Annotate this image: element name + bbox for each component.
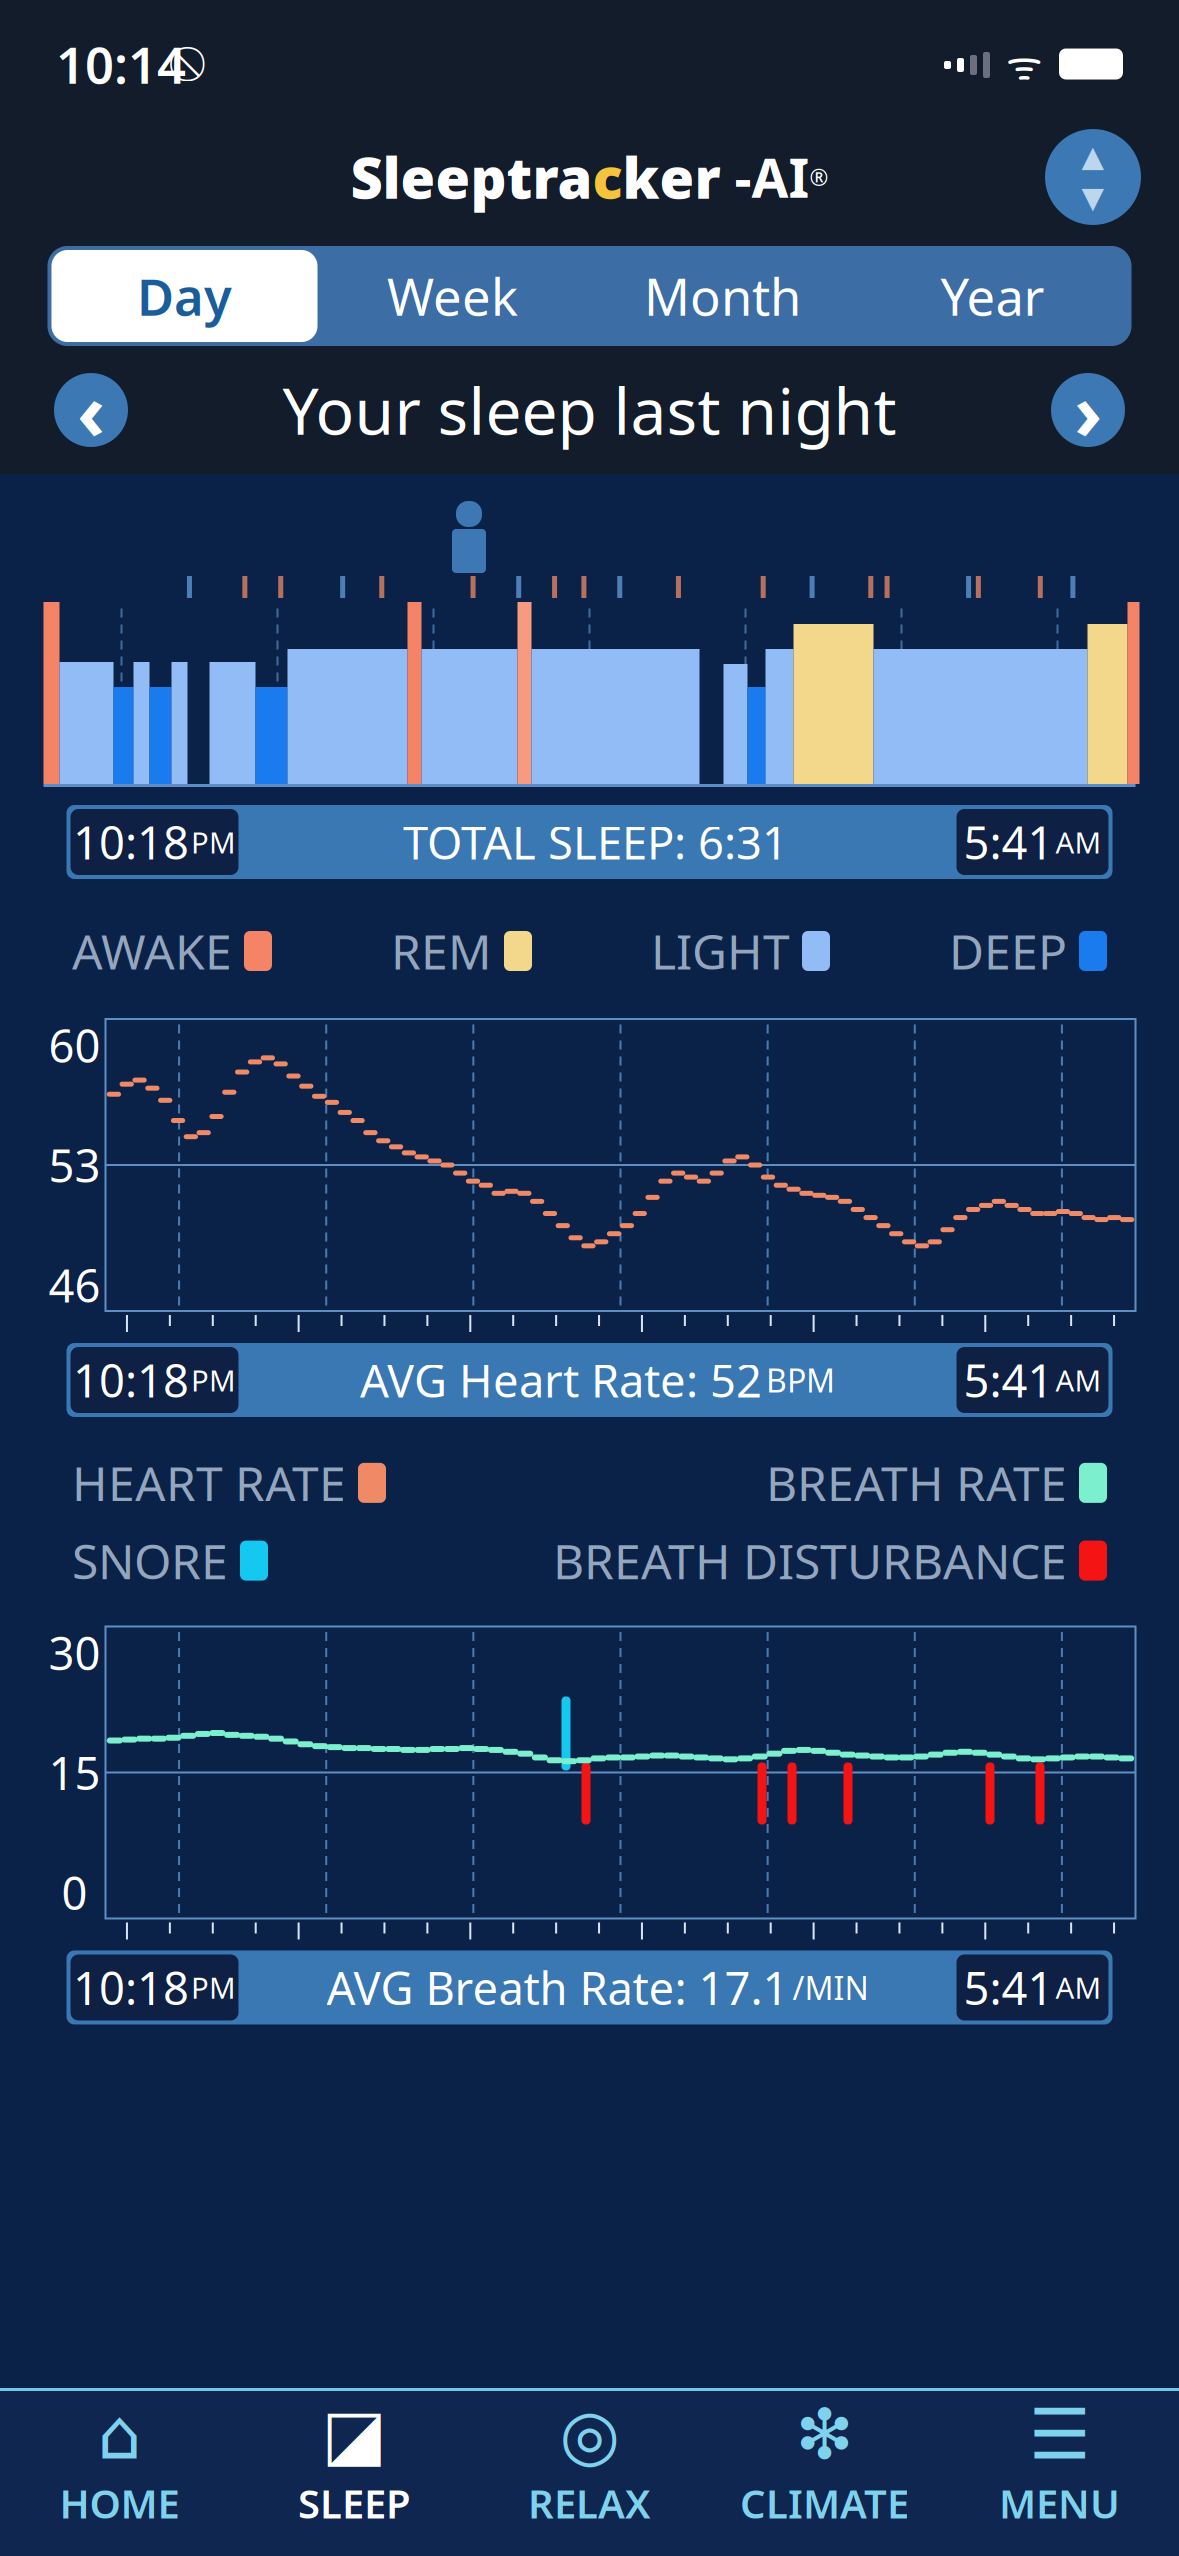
staticText: HOME: [59, 2476, 179, 2529]
staticText: Week: [387, 262, 518, 330]
button[interactable]: ❇: [707, 2391, 942, 2541]
button[interactable]: Day: [51, 250, 317, 342]
staticText: PM: [191, 822, 236, 861]
staticText: MENU: [999, 2476, 1120, 2529]
staticText: Sleeptra: [350, 140, 592, 214]
staticText: ◎: [559, 2395, 619, 2474]
staticText: ‹: [77, 359, 105, 461]
button[interactable]: ◎: [472, 2391, 707, 2541]
staticText: Day: [137, 262, 232, 330]
staticText: ❇: [795, 2395, 853, 2474]
staticText: ⃠: [186, 47, 195, 81]
staticText: 60: [48, 1015, 100, 1075]
button[interactable]: Month: [587, 250, 857, 342]
staticText: ◪: [321, 2395, 387, 2474]
button[interactable]: Year: [857, 250, 1127, 342]
staticText: ᯤ: [1006, 37, 1043, 90]
staticText: 10:14: [56, 30, 186, 98]
staticText: REM: [391, 919, 492, 983]
staticText: 15: [48, 1742, 100, 1803]
staticText: ker: [622, 140, 720, 214]
staticText: 5:41: [963, 1957, 1053, 2018]
staticText: AVG Heart Rate: 52: [360, 1350, 762, 1410]
staticText: 30: [48, 1622, 100, 1683]
staticText: Year: [940, 262, 1044, 330]
button[interactable]: ⌂: [2, 2391, 237, 2541]
staticText: AM: [1055, 822, 1101, 861]
staticText: ☰: [1028, 2395, 1090, 2474]
staticText: 5:41: [963, 1350, 1053, 1410]
staticText: CLIMATE: [740, 2476, 909, 2529]
staticText: ⌂: [97, 2395, 141, 2474]
staticText: SLEEP: [298, 2476, 411, 2529]
staticText: PM: [191, 1968, 236, 2007]
staticText: AM: [1055, 1360, 1101, 1399]
button[interactable]: ☰: [942, 2391, 1177, 2541]
staticText: BPM: [766, 1359, 835, 1401]
staticText: Month: [644, 262, 801, 330]
staticText: LIGHT: [651, 919, 790, 983]
staticText: 46: [48, 1255, 100, 1315]
staticText: PM: [191, 1360, 236, 1399]
staticText: ®: [809, 162, 828, 192]
staticText: 10:18: [73, 1957, 189, 2018]
staticText: HEART RATE: [72, 1451, 346, 1515]
staticText: ›: [1074, 359, 1102, 461]
staticText: c: [592, 140, 622, 214]
staticText: TOTAL SLEEP: 6:31: [403, 812, 788, 872]
staticText: RELAX: [528, 2476, 651, 2529]
staticText: BREATH RATE: [766, 1451, 1067, 1515]
button[interactable]: Adjust: [1045, 129, 1141, 225]
staticText: DEEP: [949, 919, 1067, 983]
staticText: 53: [48, 1135, 100, 1195]
button[interactable]: Week: [317, 250, 587, 342]
staticText: 0: [61, 1862, 87, 1922]
staticText: SNORE: [72, 1529, 228, 1592]
button[interactable]: Next night: [1051, 373, 1125, 447]
staticText: BREATH DISTURBANCE: [553, 1529, 1067, 1592]
staticText: AVG Breath Rate: 17.1: [326, 1957, 788, 2018]
staticText: /MIN: [792, 1966, 868, 2009]
staticText: 10:18: [73, 812, 189, 872]
staticText: AWAKE: [72, 919, 232, 983]
staticText: Your sleep last night: [282, 367, 896, 452]
button[interactable]: ◪: [237, 2391, 472, 2541]
staticText: -AI: [720, 142, 809, 212]
button[interactable]: Previous night: [54, 373, 128, 447]
staticText: 5:41: [963, 812, 1053, 872]
staticText: AM: [1055, 1968, 1101, 2007]
staticText: 10:18: [73, 1350, 189, 1410]
staticText: ▼: [1081, 181, 1104, 214]
staticText: ▲: [1081, 140, 1104, 173]
